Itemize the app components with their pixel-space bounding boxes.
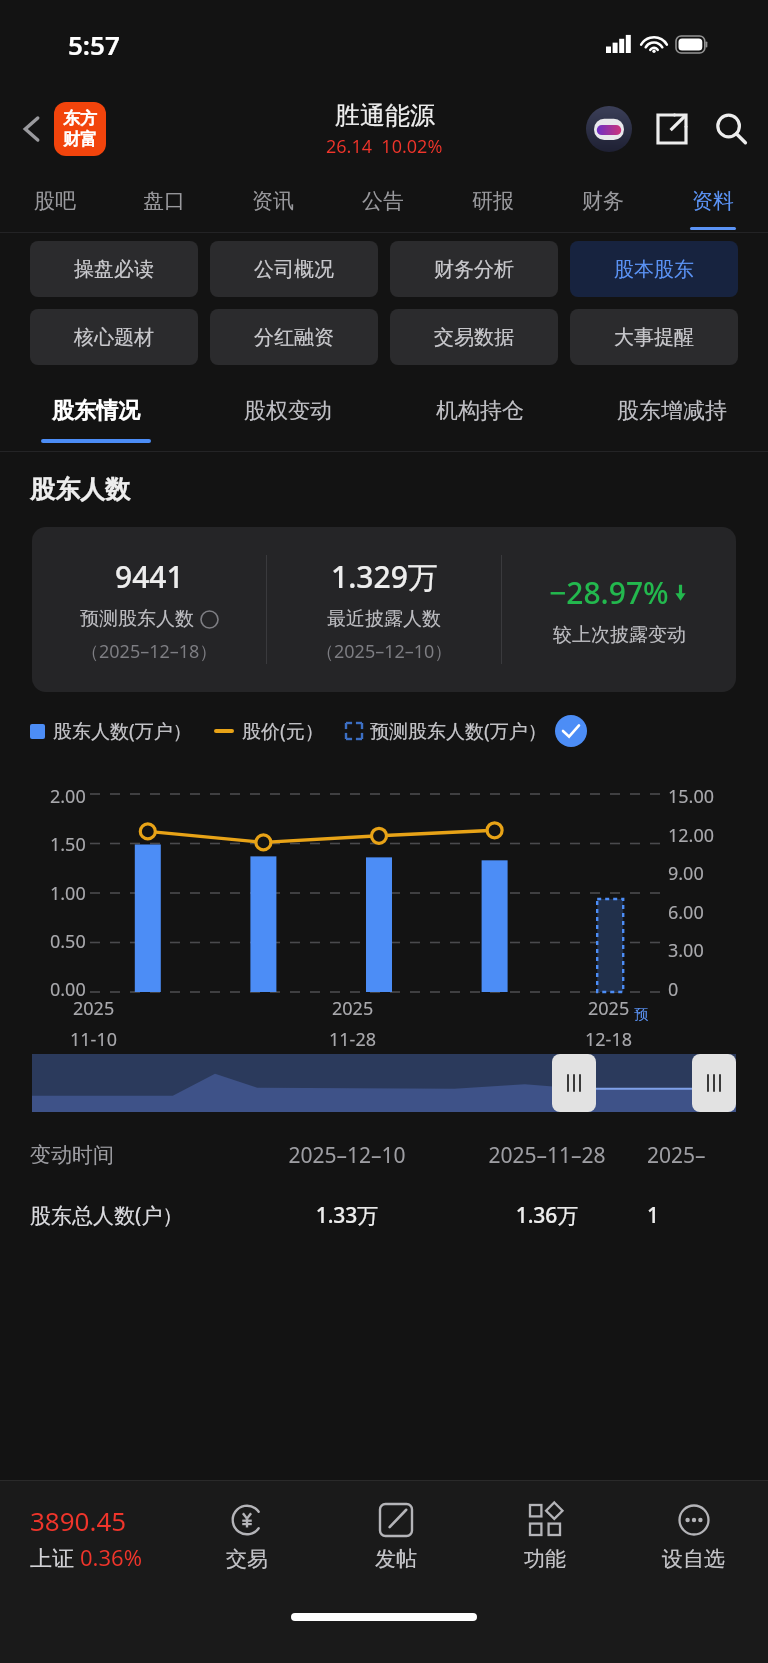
button[interactable]: 交易数据 xyxy=(390,309,558,365)
staticText: 1 xyxy=(647,1201,738,1230)
button[interactable]: 9441 xyxy=(32,527,736,692)
staticText: 大事提醒 xyxy=(614,325,694,350)
staticText: 股东人数 xyxy=(30,474,130,505)
button[interactable]: 分红融资 xyxy=(210,309,378,365)
staticText: 9.00 xyxy=(668,861,704,886)
button[interactable]: 操盘必读 xyxy=(30,241,198,297)
button[interactable]: 财务分析 xyxy=(390,241,558,297)
staticText: 6.00 xyxy=(668,900,704,925)
button[interactable]: 机构持仓 xyxy=(384,379,576,443)
button[interactable]: 股本股东 xyxy=(570,241,738,297)
button[interactable]: 财务 xyxy=(548,170,658,232)
button[interactable]: 公司概况 xyxy=(210,241,378,297)
button[interactable]: 股东情况 xyxy=(0,379,192,443)
staticText: （2025–12–10） xyxy=(316,639,453,664)
button[interactable]: 3890.45 xyxy=(0,1481,172,1593)
button[interactable]: 核心题材 xyxy=(30,309,198,365)
staticText: 公司概况 xyxy=(254,257,334,282)
button[interactable]: 设自选 xyxy=(619,1481,768,1593)
staticText: 股权变动 xyxy=(244,397,332,425)
button[interactable]: AI assistant xyxy=(586,106,632,152)
staticText: 2025–11–28 xyxy=(447,1141,647,1170)
button[interactable]: 股权变动 xyxy=(192,379,384,443)
button[interactable]: Toggle forecast xyxy=(555,715,587,747)
staticText: 2025 xyxy=(73,996,115,1021)
staticText: 0.00 xyxy=(50,977,86,1002)
staticText: 交易数据 xyxy=(434,325,514,350)
staticText: 上证 xyxy=(30,1542,80,1572)
button[interactable]: 股吧 xyxy=(0,170,109,232)
staticText: 分红融资 xyxy=(254,325,334,350)
staticText: 设自选 xyxy=(662,1546,725,1572)
staticText: 11-10 xyxy=(70,1027,117,1052)
staticText: 26.14 10.02% xyxy=(326,134,443,159)
button[interactable]: 盘口 xyxy=(109,170,218,232)
button[interactable]: Range start handle xyxy=(552,1054,596,1112)
staticText: 预测股东人数 xyxy=(80,607,194,631)
staticText: 较上次披露变动 xyxy=(553,623,686,647)
staticText: 胜通能源 xyxy=(335,100,435,131)
button[interactable]: East Money xyxy=(54,102,106,156)
staticText: 3.00 xyxy=(668,938,704,963)
staticText: 股价(元） xyxy=(242,718,324,744)
staticText: 1.329万 xyxy=(331,556,438,597)
staticText: 核心题材 xyxy=(74,325,154,350)
staticText: 财务分析 xyxy=(434,257,514,282)
staticText: 15.00 xyxy=(668,784,715,809)
button[interactable]: Range end handle xyxy=(692,1054,736,1112)
staticText: 3890.45 xyxy=(30,1503,127,1538)
staticText: 股本股东 xyxy=(614,257,694,282)
staticText: 功能 xyxy=(524,1546,566,1572)
staticText: 股东情况 xyxy=(52,397,140,425)
staticText: 2025 xyxy=(332,996,374,1021)
staticText: 0.50 xyxy=(50,929,86,954)
button[interactable]: 股东增减持 xyxy=(576,379,768,443)
staticText: 最近披露人数 xyxy=(327,607,441,631)
staticText: 预 xyxy=(634,1006,648,1024)
staticText: 12-18 xyxy=(585,1027,632,1052)
staticText: 股东增减持 xyxy=(617,397,727,425)
button[interactable]: 研报 xyxy=(438,170,548,232)
staticText: 12.00 xyxy=(668,823,715,848)
staticText: 9441 xyxy=(115,556,184,597)
staticText: 盘口 xyxy=(143,188,185,214)
staticText: 操盘必读 xyxy=(74,257,154,282)
staticText: 1.33万 xyxy=(247,1201,447,1230)
staticText: 0.36% xyxy=(80,1542,142,1572)
staticText: 机构持仓 xyxy=(436,397,524,425)
button[interactable]: 发帖 xyxy=(321,1481,470,1593)
staticText: 预测股东人数(万户） xyxy=(370,718,547,744)
staticText: 5:57 xyxy=(68,27,120,62)
staticText: 财富 xyxy=(63,129,97,150)
staticText: 11-28 xyxy=(329,1027,376,1052)
staticText: −28.97% xyxy=(549,572,669,613)
staticText: 股东人数(万户） xyxy=(53,718,192,744)
button[interactable]: 资料 xyxy=(658,170,768,232)
staticText: 股东总人数(户） xyxy=(30,1201,247,1230)
staticText: 变动时间 xyxy=(30,1142,247,1168)
button[interactable]: 大事提醒 xyxy=(570,309,738,365)
staticText: 资讯 xyxy=(252,188,294,214)
button[interactable]: Back xyxy=(8,105,56,153)
staticText: 2025–12–10 xyxy=(247,1141,447,1170)
staticText: 2025 xyxy=(588,996,630,1021)
staticText: 0 xyxy=(668,977,679,1002)
staticText: 1.50 xyxy=(50,832,86,857)
staticText: 股吧 xyxy=(34,188,76,214)
staticText: 2.00 xyxy=(50,784,86,809)
staticText: 东方 xyxy=(63,108,97,129)
staticText: 1.36万 xyxy=(447,1201,647,1230)
button[interactable]: 资讯 xyxy=(218,170,328,232)
staticText: 资料 xyxy=(692,188,734,214)
staticText: 发帖 xyxy=(375,1546,417,1572)
staticText: 2025– xyxy=(647,1141,738,1170)
staticText: （2025–12–18） xyxy=(81,639,218,664)
button[interactable]: Search xyxy=(708,106,754,152)
staticText: 交易 xyxy=(226,1546,268,1572)
staticText: 1.00 xyxy=(50,881,86,906)
button[interactable]: 公告 xyxy=(328,170,438,232)
staticText: 研报 xyxy=(472,188,514,214)
button[interactable]: Share xyxy=(650,107,694,151)
button[interactable]: 功能 xyxy=(470,1481,619,1593)
button[interactable]: 交易 xyxy=(172,1481,321,1593)
